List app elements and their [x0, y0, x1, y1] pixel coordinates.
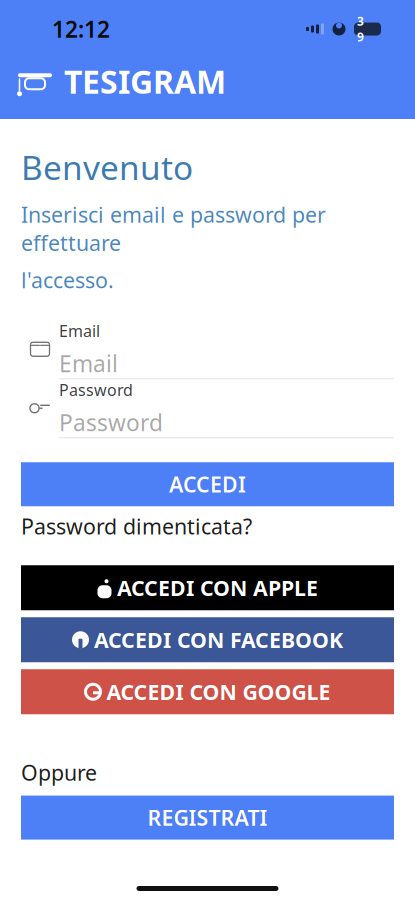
staticText: Email: [59, 320, 100, 341]
staticText: 12:12: [52, 14, 110, 44]
staticText: Oppure: [21, 758, 97, 787]
staticText: Benvenuto: [21, 145, 193, 189]
staticText: ACCEDI CON FACEBOOK: [94, 626, 343, 654]
staticText: Password: [59, 407, 163, 437]
staticText: REGISTRATI: [147, 803, 267, 832]
button[interactable]: ACCEDI CON FACEBOOK: [21, 617, 394, 662]
staticText: l'accesso.: [21, 266, 114, 294]
staticText: 39: [357, 13, 364, 45]
staticText: Email: [59, 348, 118, 378]
button[interactable]: ACCEDI CON GOOGLE: [21, 669, 394, 714]
staticText: Password: [59, 379, 133, 400]
staticText: Password dimenticata?: [21, 512, 252, 540]
button[interactable]: ACCEDI: [21, 462, 394, 506]
button[interactable]: ACCEDI CON APPLE: [21, 565, 394, 610]
staticText: ACCEDI CON GOOGLE: [106, 678, 330, 706]
staticText: TESIGRAM: [64, 60, 226, 102]
staticText: Inserisci email e password per effettuar…: [21, 200, 326, 257]
staticText: ACCEDI CON APPLE: [117, 574, 318, 602]
staticText: ACCEDI: [169, 470, 246, 498]
button[interactable]: Password dimenticata?: [21, 513, 394, 539]
button[interactable]: REGISTRATI: [21, 796, 394, 840]
